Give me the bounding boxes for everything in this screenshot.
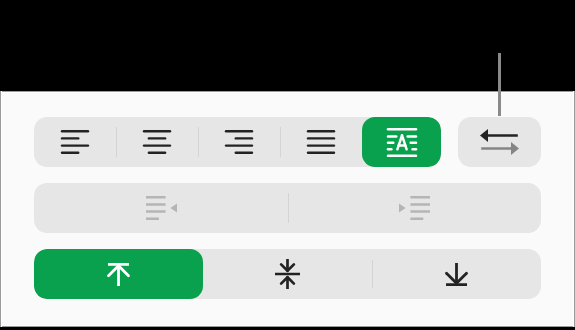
button[interactable]: Increase indent: [288, 183, 541, 233]
button[interactable]: Text options: [362, 117, 441, 167]
button[interactable]: Decrease indent: [34, 183, 288, 233]
button[interactable]: Justify: [280, 117, 362, 167]
button[interactable]: Align middle: [203, 249, 372, 299]
button[interactable]: Align center: [116, 117, 198, 167]
button[interactable]: Align right: [198, 117, 280, 167]
button[interactable]: Align top: [34, 249, 203, 299]
button[interactable]: Align bottom: [372, 249, 541, 299]
button[interactable]: Align left: [34, 117, 116, 167]
button[interactable]: Text direction: [458, 117, 541, 167]
